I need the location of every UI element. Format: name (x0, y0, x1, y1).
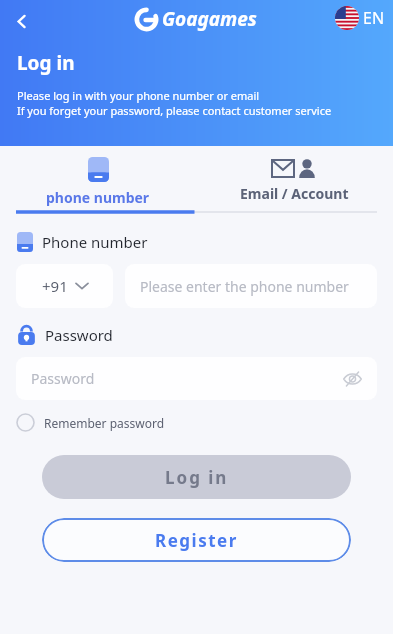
staticText: Remember password (44, 415, 165, 431)
button[interactable]: Remember password (16, 413, 165, 432)
staticText: Phone number (42, 232, 148, 252)
button[interactable]: Register (42, 518, 351, 562)
staticText: Register (155, 529, 238, 552)
staticText: Email / Account (240, 184, 349, 203)
button[interactable]: +91 (16, 264, 113, 308)
button[interactable]: Language EN (335, 6, 385, 30)
button[interactable]: Password (16, 357, 377, 400)
button[interactable]: phone number (0, 146, 196, 214)
button[interactable]: Email / Account (196, 146, 393, 214)
staticText: +91 (42, 276, 68, 296)
staticText: If you forget your password, please cont… (17, 103, 332, 118)
staticText: Goagames (162, 6, 257, 32)
staticText: Please enter the phone number (140, 277, 349, 296)
staticText: Password (45, 325, 113, 345)
staticText: Please log in with your phone number or … (17, 88, 260, 103)
button[interactable]: Please enter the phone number (125, 264, 377, 308)
staticText: Log in (165, 466, 229, 489)
staticText: phone number (46, 188, 150, 207)
button[interactable]: Log in (42, 455, 351, 499)
staticText: EN (363, 7, 385, 29)
button[interactable]: Back (3, 3, 39, 39)
staticText: Password (31, 369, 95, 388)
button[interactable]: Show password (339, 366, 365, 392)
staticText: Log in (17, 50, 75, 76)
